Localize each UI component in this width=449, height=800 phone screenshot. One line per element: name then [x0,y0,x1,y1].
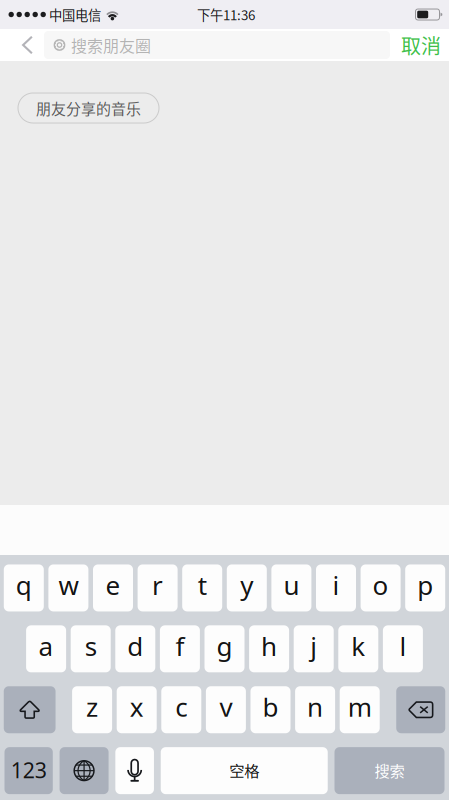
staticText: 搜索朋友圈 [71,33,151,57]
staticText: s [85,628,97,663]
button[interactable]: Delete [396,686,445,733]
staticText: u [283,567,299,603]
button[interactable]: t [182,564,222,611]
button[interactable]: c [161,686,201,733]
button[interactable]: i [316,564,356,611]
button[interactable]: u [271,564,311,611]
staticText: 空格 [229,759,259,781]
button[interactable]: 搜索朋友圈 [44,31,390,59]
staticText: l [399,628,406,663]
button[interactable]: a [26,625,66,672]
staticText: c [175,689,187,724]
button[interactable]: e [93,564,133,611]
button[interactable]: 朋友分享的音乐 [18,93,159,123]
staticText: g [216,628,232,663]
staticText: 123 [11,755,47,784]
staticText: 朋友分享的音乐 [36,97,141,119]
staticText: t [198,567,207,603]
button[interactable]: o [361,564,401,611]
button[interactable]: m [340,686,380,733]
staticText: q [16,567,32,603]
button[interactable]: j [294,625,334,672]
staticText: f [175,628,184,663]
staticText: k [351,628,365,663]
button[interactable]: Shift [4,686,56,733]
button[interactable]: z [72,686,112,733]
staticText: w [58,567,78,603]
staticText: r [152,567,163,603]
staticText: x [130,689,144,724]
button[interactable]: r [138,564,178,611]
button[interactable]: l [383,625,423,672]
button[interactable]: Next keyboard [60,747,109,794]
button[interactable]: 123 [4,747,53,794]
staticText: j [310,628,317,663]
button[interactable]: 搜索 [334,747,444,794]
staticText: v [219,689,232,724]
staticText: m [348,689,372,724]
staticText: h [261,628,277,663]
staticText: n [307,689,323,724]
staticText: p [417,567,433,603]
staticText: e [105,567,120,603]
staticText: z [86,689,98,724]
staticText: d [127,628,143,663]
button[interactable]: q [4,564,44,611]
staticText: 取消 [401,30,441,59]
button[interactable]: k [338,625,378,672]
staticText: y [240,567,253,603]
button[interactable]: Back [11,31,44,59]
staticText: 中国电信 [49,5,101,24]
staticText: a [39,628,54,663]
staticText: 下午11:36 [197,5,255,24]
staticText: 搜索 [374,759,404,781]
button[interactable]: v [206,686,246,733]
button[interactable]: Dictation [115,747,154,794]
button[interactable]: s [71,625,111,672]
button[interactable]: g [204,625,244,672]
button[interactable]: y [227,564,267,611]
button[interactable]: h [249,625,289,672]
button[interactable]: x [117,686,157,733]
button[interactable]: b [250,686,290,733]
button[interactable]: p [405,564,445,611]
button[interactable]: n [295,686,335,733]
staticText: i [332,567,339,603]
staticText: b [262,689,278,724]
button[interactable]: f [160,625,200,672]
button[interactable]: w [48,564,88,611]
button[interactable]: 取消 [401,31,441,59]
button[interactable]: d [115,625,155,672]
staticText: o [373,567,389,603]
button[interactable]: 空格 [161,747,328,794]
